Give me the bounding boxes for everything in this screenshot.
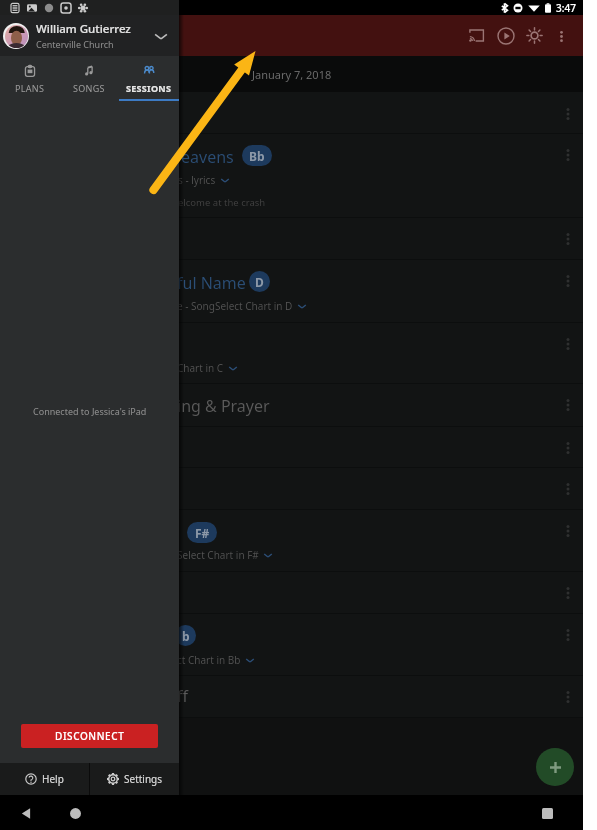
staticText: SONGS [73,82,105,94]
button[interactable]: Add [536,748,574,786]
button[interactable]: Cast [462,21,491,50]
button[interactable] [0,134,583,218]
button[interactable] [0,218,583,260]
button[interactable]: Item options [556,143,580,167]
button[interactable]: Item options [556,581,580,605]
button[interactable] [0,384,583,427]
staticText: Select Chart in F# [177,548,259,562]
button[interactable]: Back [13,800,39,826]
button[interactable]: Play [491,21,520,50]
staticText: Chart in C [177,361,224,375]
button[interactable]: Item options [556,519,580,543]
staticText: William Gutierrez [36,21,131,37]
button[interactable]: SESSIONS [119,56,179,101]
button[interactable]: William Gutierrez [0,15,179,56]
button[interactable]: Switch account [150,25,172,47]
button[interactable] [0,427,583,468]
button[interactable]: Home [62,800,88,826]
staticText: ff [177,685,189,707]
button[interactable]: Item options [556,102,580,126]
button[interactable] [0,676,583,718]
staticText: e - SongSelect Chart in D [177,299,293,313]
button[interactable] [0,323,583,384]
staticText: s - lyrics [178,173,216,187]
button[interactable]: DISCONNECT [21,724,158,748]
staticText: b [182,628,190,644]
staticText: January 7, 2018 [252,67,332,82]
button[interactable] [0,260,583,323]
button[interactable]: Brightness [520,21,549,50]
staticText: Settings [124,772,163,786]
button[interactable]: Item options [556,332,580,356]
button[interactable]: Item options [556,623,580,647]
button[interactable]: Recents [534,800,560,826]
button[interactable]: Item options [556,269,580,293]
staticText: Bb [249,148,265,164]
staticText: Help [42,772,64,786]
staticText: ful Name [177,272,246,294]
button[interactable] [0,510,583,572]
button[interactable]: More options [549,24,573,48]
button[interactable]: PLANS [0,56,59,101]
staticText: ct Chart in Bb [177,653,241,667]
button[interactable]: Item options [556,477,580,501]
staticText: Centerville Church [36,38,114,50]
staticText: F# [195,525,210,541]
button[interactable]: Item options [556,436,580,460]
staticText: eavens [181,146,234,168]
button[interactable]: Item options [556,685,580,709]
button[interactable]: Item options [556,393,580,417]
button[interactable] [0,92,583,134]
button[interactable]: SONGS [59,56,119,101]
button[interactable]: Settings [90,763,179,795]
staticText: ing & Prayer [177,395,270,417]
staticText: elcome at the crash [178,196,266,209]
staticText: SESSIONS [126,82,172,94]
button[interactable] [0,614,583,676]
button[interactable] [0,572,583,614]
button[interactable] [0,468,583,510]
button[interactable]: Item options [556,227,580,251]
staticText: 3:47 [556,1,576,15]
staticText: DISCONNECT [55,729,125,743]
staticText: PLANS [15,82,45,94]
staticText: Connected to Jessica's iPad [33,405,147,417]
staticText: D [255,274,264,290]
button[interactable]: Help [0,763,89,795]
